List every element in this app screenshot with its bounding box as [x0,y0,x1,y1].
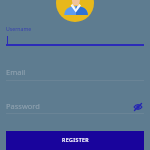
staticText: Email [6,67,26,77]
button[interactable]: Username [6,25,144,46]
button[interactable]: Password [6,102,144,114]
button[interactable]: REGISTER [6,131,144,150]
staticText: Password [6,101,132,111]
button[interactable]: Email [6,67,144,81]
staticText: REGISTER [62,136,89,143]
staticText: Username [6,25,32,32]
button[interactable]: Show password [132,102,144,112]
